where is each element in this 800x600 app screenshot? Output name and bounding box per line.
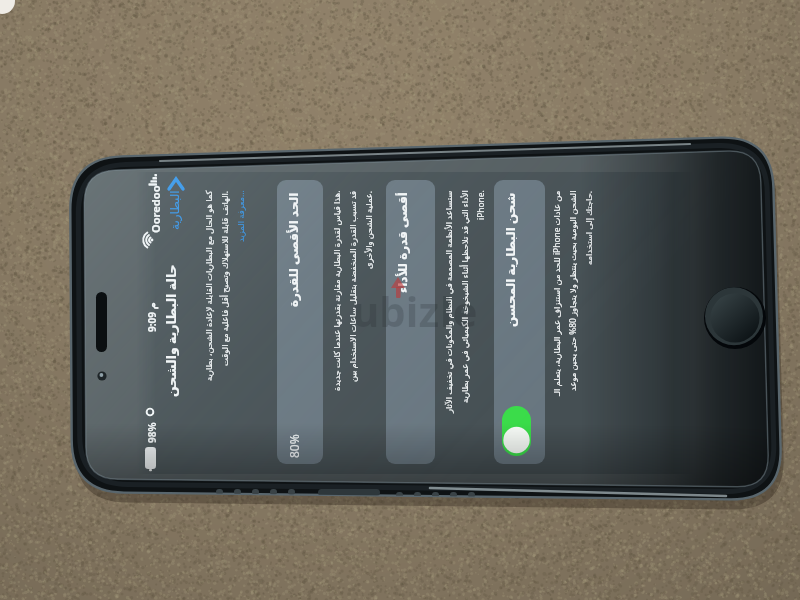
button[interactable]: iPhone battery settings photo: [0, 0, 800, 600]
